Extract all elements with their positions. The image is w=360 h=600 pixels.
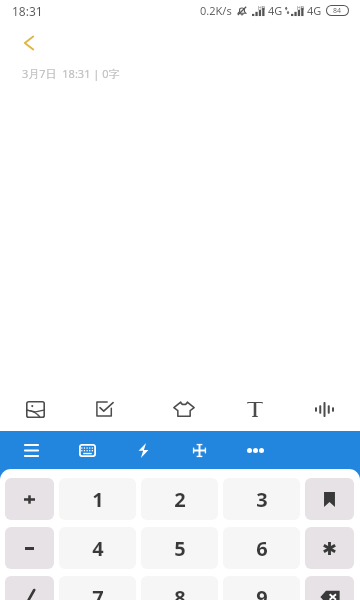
button[interactable]: 6 <box>223 527 300 569</box>
button[interactable]: 2 <box>141 478 218 520</box>
staticText: 6 <box>256 535 268 562</box>
button[interactable]: Sticker <box>156 387 212 431</box>
button[interactable]: / <box>5 576 54 600</box>
staticText: 5 <box>174 535 186 562</box>
staticText: 18:31 <box>12 3 43 19</box>
button[interactable]: Move cursor <box>171 431 227 469</box>
staticText: 4G <box>268 3 283 18</box>
button[interactable]: 7 <box>59 576 136 600</box>
staticText: 7 <box>92 584 104 600</box>
staticText: 3月7日 18:31 | 0字 <box>22 66 120 81</box>
button[interactable]: Keyboard <box>59 431 115 469</box>
button[interactable]: Menu <box>3 431 59 469</box>
button[interactable]: - <box>5 527 54 569</box>
button[interactable]: + <box>5 478 54 520</box>
staticText: 9 <box>256 584 268 600</box>
button[interactable]: 8 <box>141 576 218 600</box>
staticText: HD <box>297 5 305 12</box>
button[interactable]: Back <box>13 27 45 59</box>
staticText: 4 <box>92 535 104 562</box>
staticText: 4G <box>307 3 322 18</box>
staticText: 1 <box>92 486 104 513</box>
staticText: 0.2K/s <box>200 3 232 18</box>
button[interactable]: 9 <box>223 576 300 600</box>
button[interactable]: 5 <box>141 527 218 569</box>
staticText: 2 <box>174 486 186 513</box>
button[interactable]: * <box>305 527 354 569</box>
button[interactable]: 1 <box>59 478 136 520</box>
button[interactable]: 3 <box>223 478 300 520</box>
button[interactable]: More options <box>227 431 283 469</box>
staticText: HD <box>258 5 266 12</box>
button[interactable]: Text style <box>227 387 283 431</box>
button[interactable]: 4 <box>59 527 136 569</box>
staticText: 84 <box>333 6 342 15</box>
button[interactable]: Checklist <box>77 387 133 431</box>
staticText: 8 <box>174 584 186 600</box>
button[interactable]: Bookmark <box>305 478 354 520</box>
button[interactable]: Insert image <box>7 387 63 431</box>
button[interactable]: Voice input <box>296 387 352 431</box>
button[interactable]: Quick phrase <box>115 431 171 469</box>
button[interactable]: Backspace <box>305 576 354 600</box>
staticText: 3 <box>256 486 268 513</box>
